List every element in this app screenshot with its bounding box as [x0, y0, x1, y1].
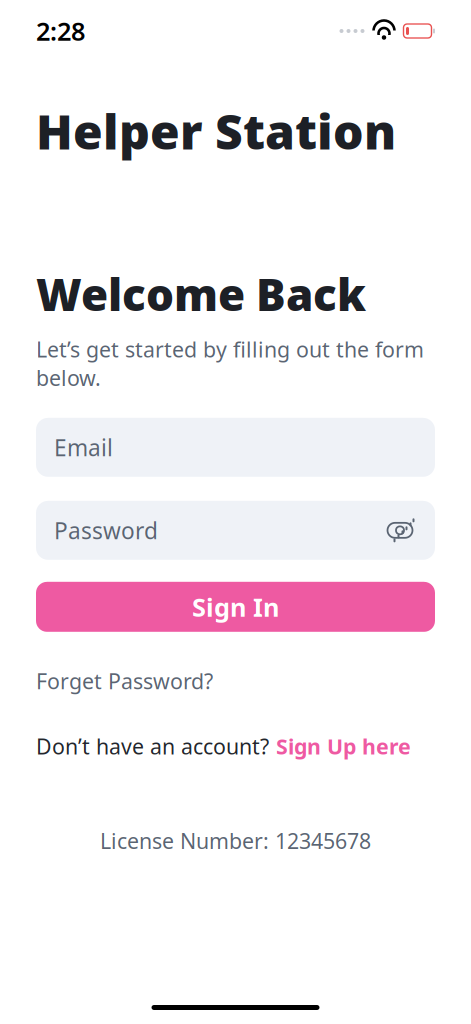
staticText: Don’t have an account?: [36, 732, 269, 760]
staticText: Password: [54, 515, 158, 545]
staticText: Let’s get started by filling out the for…: [36, 335, 424, 392]
staticText: Sign Up here: [276, 732, 411, 760]
button[interactable]: Show password: [383, 513, 417, 547]
staticText: Helper Station: [36, 99, 396, 163]
staticText: Email: [54, 432, 113, 462]
staticText: License Number: 12345678: [100, 826, 371, 855]
staticText: 2:28: [36, 14, 85, 48]
staticText: Welcome Back: [36, 265, 366, 323]
staticText: Sign In: [192, 590, 279, 624]
staticText: Forget Password?: [36, 667, 213, 695]
button[interactable]: Sign In: [36, 582, 435, 632]
button[interactable]: Forget Password?: [36, 663, 213, 699]
button[interactable]: Sign Up here: [276, 732, 411, 760]
